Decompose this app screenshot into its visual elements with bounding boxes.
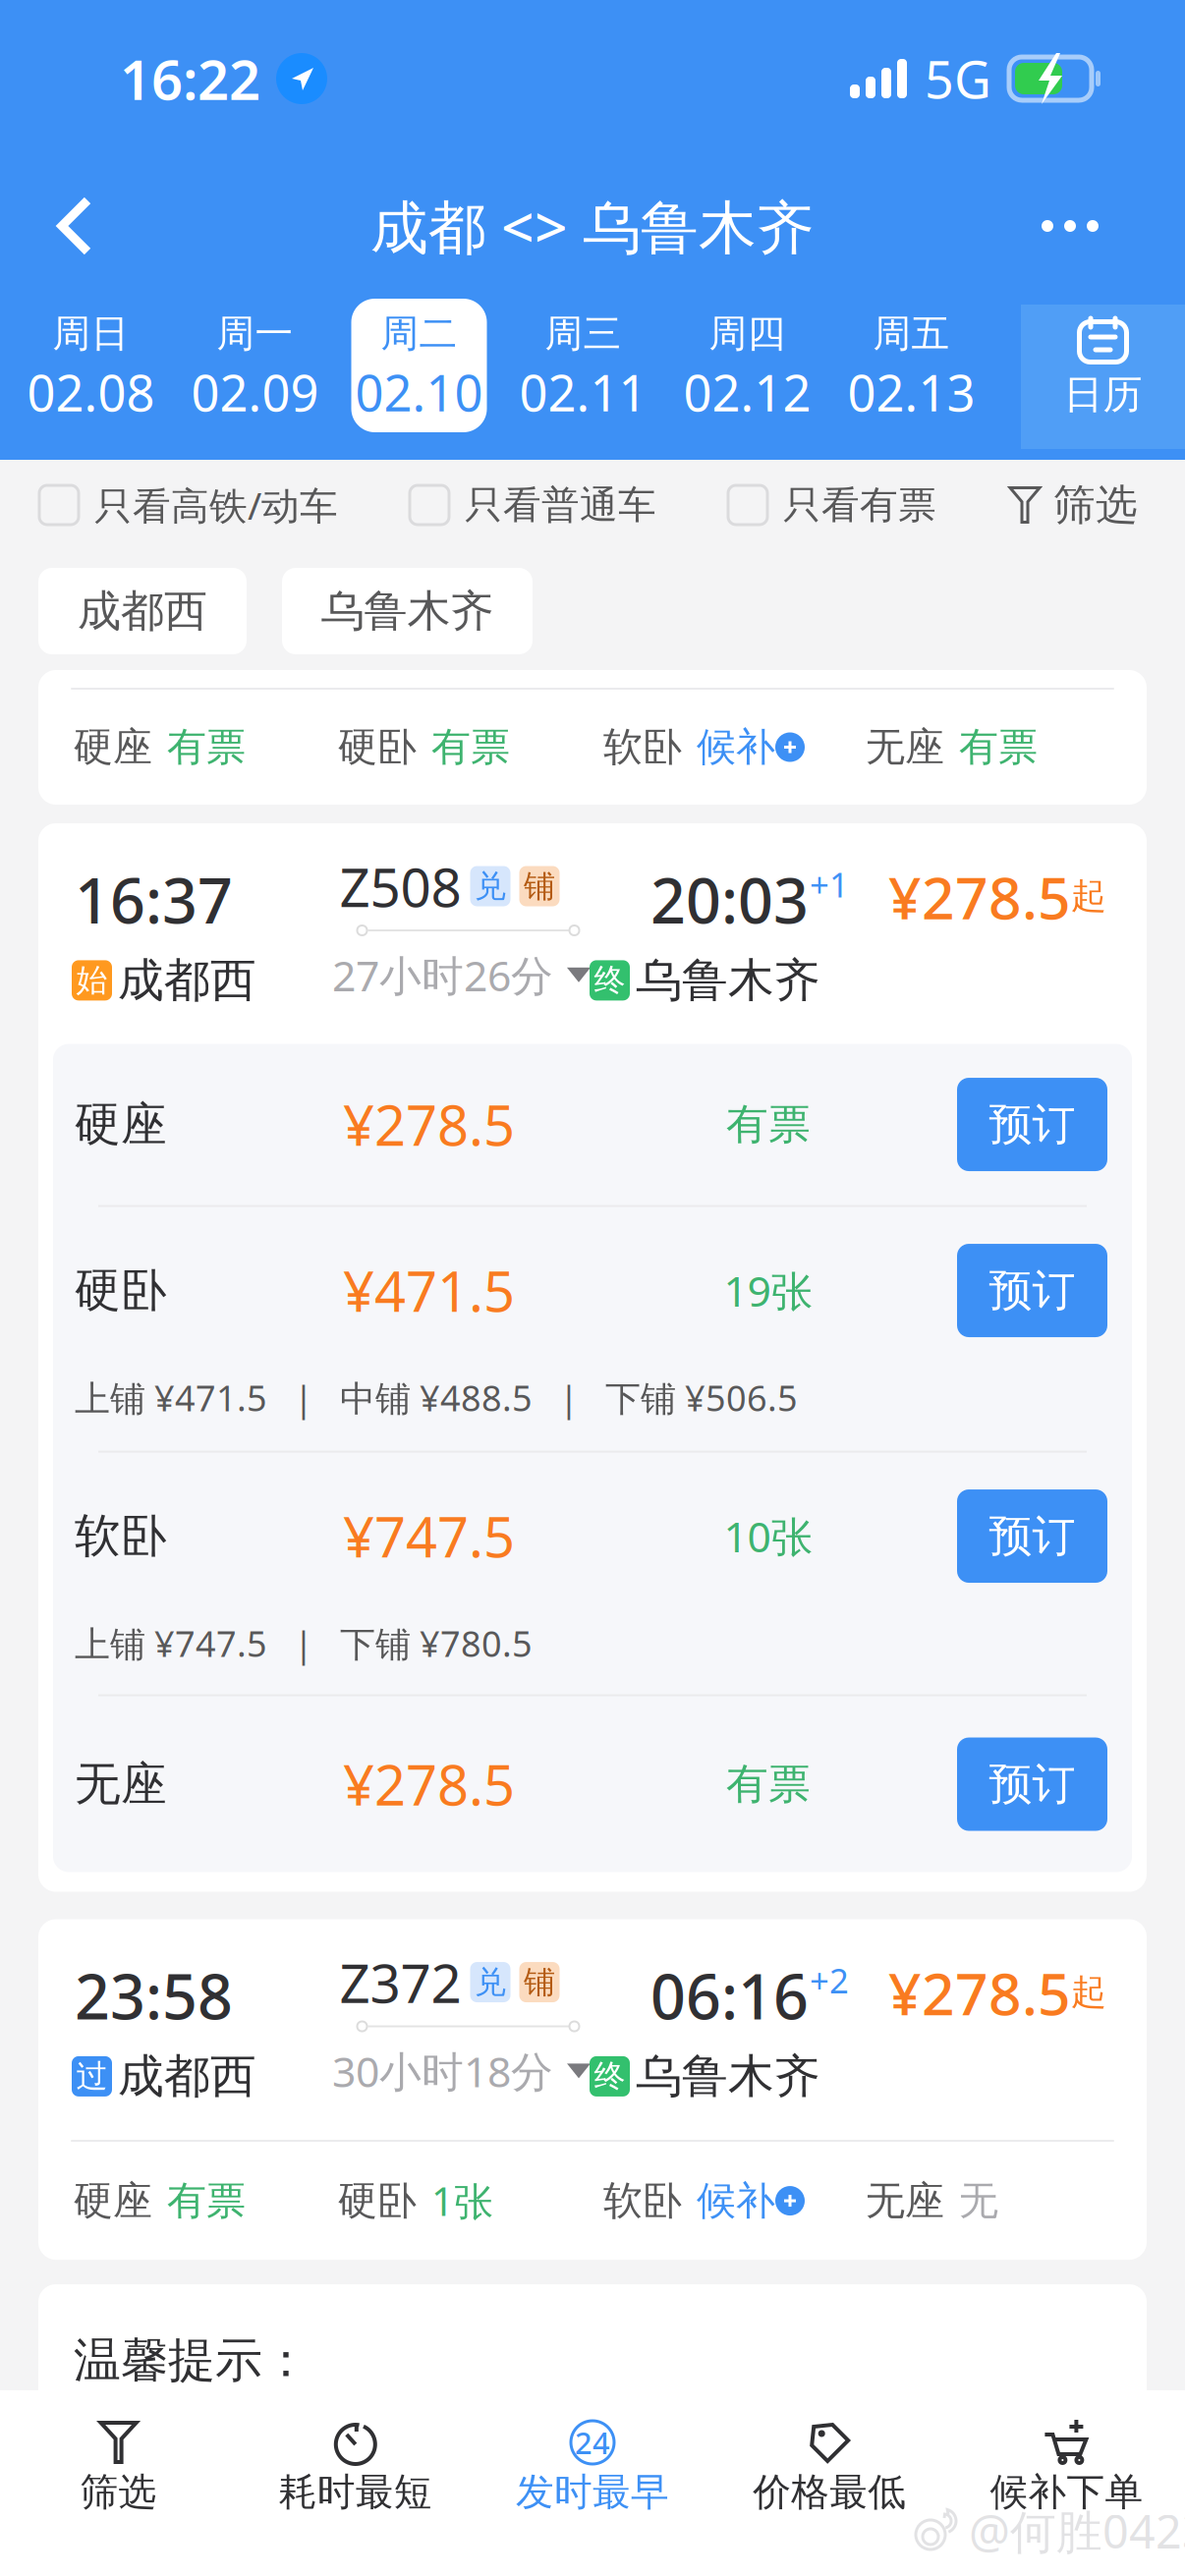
button[interactable]: 乌鲁木齐 [282, 568, 533, 654]
button[interactable]: 周四 [656, 292, 820, 457]
button[interactable]: 耗时最短 [237, 2390, 474, 2576]
button[interactable]: 只看有票 [728, 482, 936, 528]
staticText: 02.11 [519, 359, 647, 425]
staticText: 预订 [989, 1758, 1075, 1811]
staticText: 预订 [989, 1098, 1075, 1151]
button[interactable]: 价格最低 [711, 2390, 948, 2576]
button[interactable]: 只看普通车 [410, 482, 656, 528]
button[interactable]: 筛选 [1008, 479, 1138, 531]
staticText: ¥471.5 [343, 1254, 515, 1327]
staticText: 耗时最短 [279, 2469, 432, 2516]
staticText: 19张 [724, 1263, 813, 1318]
staticText: 27小时26分 [332, 947, 553, 1003]
staticText: 02.13 [847, 359, 975, 425]
staticText: ¥278.5 [888, 859, 1071, 935]
button[interactable]: 周五 [820, 292, 985, 457]
staticText: 发时最早 [516, 2469, 669, 2516]
button[interactable]: 周二 [328, 292, 492, 457]
button[interactable]: 只看高铁/动车 [39, 480, 338, 530]
button[interactable]: 成都西 [38, 568, 247, 654]
staticText: 周一 [217, 310, 293, 357]
button[interactable]: 更多 [1006, 162, 1134, 290]
staticText: 预订 [989, 1510, 1075, 1563]
button[interactable]: 预订 [957, 1244, 1107, 1337]
staticText: 成都西 [118, 2048, 256, 2105]
staticText: 02.10 [355, 359, 483, 425]
button[interactable]: 24 [474, 2390, 711, 2576]
staticText: 起 [1071, 874, 1106, 918]
staticText: 23:58 [75, 1955, 233, 2036]
staticText: 02.08 [27, 359, 155, 425]
staticText: 硬座 [74, 723, 152, 771]
staticText: 日历 [1064, 370, 1142, 419]
staticText: 价格最低 [753, 2469, 906, 2516]
staticText: ¥278.5 [343, 1088, 515, 1161]
staticText: 有票 [167, 723, 246, 771]
staticText: 硬卧 [75, 1262, 167, 1319]
staticText: 硬卧 [338, 2177, 417, 2225]
staticText: 成都西 [78, 585, 207, 638]
staticText: 16:22 [120, 42, 260, 115]
staticText: 候补 [697, 723, 775, 771]
staticText: 软卧 [75, 1508, 167, 1564]
staticText: +2 [810, 1958, 849, 2003]
staticText: 有票 [431, 723, 510, 771]
button[interactable]: 预订 [957, 1489, 1107, 1583]
staticText: 30小时18分 [332, 2043, 553, 2099]
staticText: ¥747.5 [343, 1500, 515, 1573]
staticText: 有票 [167, 2177, 246, 2225]
staticText: 24 [575, 2422, 610, 2462]
staticText: 无座 [866, 723, 944, 771]
staticText: 有票 [726, 1758, 811, 1810]
staticText: 周日 [53, 310, 129, 357]
staticText: 成都西 [118, 952, 256, 1008]
staticText: 乌鲁木齐 [321, 585, 494, 638]
staticText: 铺 [524, 1963, 555, 2001]
staticText: 乌鲁木齐 [636, 2048, 820, 2105]
staticText: 无 [959, 2177, 998, 2225]
staticText: 候补 [697, 2177, 775, 2225]
button[interactable]: 返回 [18, 162, 132, 290]
staticText: 软卧 [603, 2177, 682, 2225]
staticText: 温馨提示： [74, 2331, 310, 2389]
staticText: 硬卧 [338, 723, 417, 771]
staticText: 02.12 [683, 359, 811, 425]
staticText: 筛选 [1053, 479, 1138, 531]
staticText: 预订 [989, 1264, 1075, 1317]
button[interactable]: 筛选 [0, 2390, 237, 2576]
staticText: ¥278.5 [888, 1955, 1071, 2031]
button[interactable]: 周三 [492, 292, 656, 457]
staticText: 10张 [724, 1508, 813, 1564]
staticText: 无座 [866, 2177, 944, 2225]
staticText: 起 [1071, 1970, 1106, 2014]
button[interactable]: 预订 [957, 1078, 1107, 1171]
staticText: 硬座 [74, 2177, 152, 2225]
staticText: Z372 [339, 1946, 461, 2018]
staticText: 1张 [431, 2175, 493, 2227]
staticText: 始 [76, 961, 108, 1000]
staticText: 只看高铁/动车 [94, 480, 338, 530]
staticText: 无座 [75, 1756, 167, 1812]
button[interactable]: 日历 [1021, 292, 1185, 457]
staticText: 20:03 [650, 859, 809, 940]
staticText: 上铺 ¥747.5 | 下铺 ¥780.5 [75, 1620, 533, 1667]
staticText: +1 [810, 862, 849, 907]
staticText: 周五 [873, 310, 950, 357]
staticText: 终 [594, 961, 625, 1000]
staticText: 筛选 [80, 2469, 157, 2516]
staticText: Z508 [339, 851, 461, 922]
staticText: 只看普通车 [465, 482, 656, 528]
button[interactable]: 周日 [0, 292, 164, 457]
staticText: 成都 <> 乌鲁木齐 [370, 188, 815, 264]
button[interactable]: 预订 [957, 1737, 1107, 1831]
staticText: 铺 [524, 867, 555, 905]
staticText: 候补下单 [990, 2469, 1143, 2516]
button[interactable]: 周一 [164, 292, 328, 457]
staticText: 乌鲁木齐 [636, 952, 820, 1008]
button[interactable]: 候补下单 [948, 2390, 1185, 2576]
staticText: 有票 [959, 723, 1038, 771]
staticText: 软卧 [603, 723, 682, 771]
staticText: 有票 [726, 1099, 811, 1150]
staticText: ¥278.5 [343, 1748, 515, 1821]
staticText: 硬座 [75, 1096, 167, 1153]
